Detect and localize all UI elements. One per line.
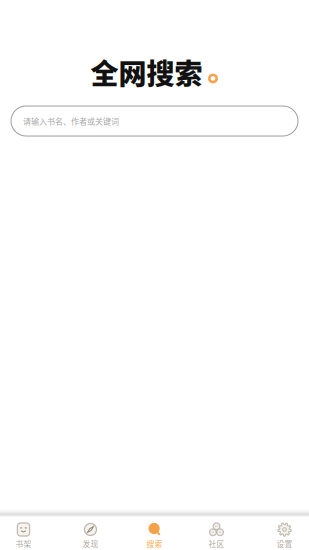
- button[interactable]: 发现: [60, 517, 120, 550]
- button[interactable]: 搜索: [124, 517, 184, 550]
- staticText: 社区: [208, 538, 224, 549]
- staticText: 书架: [15, 538, 31, 549]
- staticText: 请输入书名、作者或关键词: [23, 115, 119, 127]
- staticText: 设置: [276, 538, 292, 549]
- button[interactable]: 请输入书名、作者或关键词: [11, 106, 298, 136]
- button[interactable]: 设置: [254, 517, 309, 550]
- staticText: 全网搜索: [90, 52, 202, 92]
- staticText: 发现: [82, 538, 98, 549]
- staticText: 搜索: [146, 538, 162, 549]
- button[interactable]: 社区: [186, 517, 246, 550]
- button[interactable]: 书架: [0, 517, 53, 550]
